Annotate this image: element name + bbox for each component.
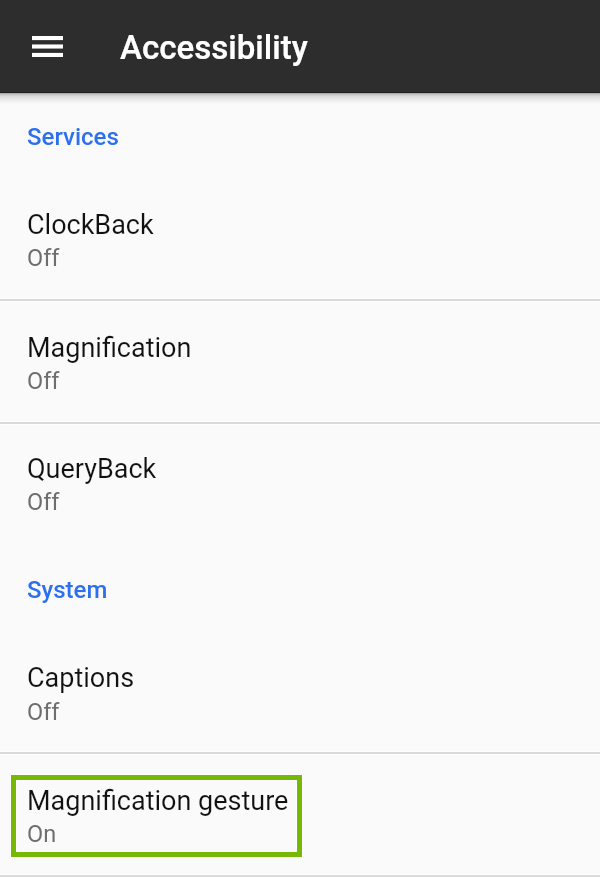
staticText: Magnification gesture: [27, 785, 289, 817]
staticText: Magnification: [27, 332, 192, 364]
button[interactable]: QueryBack, Off: [0, 425, 600, 546]
button[interactable]: Magnification, Off: [0, 302, 600, 421]
staticText: Services: [27, 123, 119, 151]
staticText: QueryBack: [27, 453, 157, 485]
button[interactable]: Open navigation drawer: [21, 20, 73, 72]
staticText: Off: [27, 367, 60, 395]
staticText: Off: [27, 488, 60, 516]
staticText: On: [27, 820, 57, 848]
staticText: Captions: [27, 662, 135, 694]
button[interactable]: Captions, Off: [0, 628, 600, 751]
staticText: Accessibility: [120, 28, 308, 67]
button[interactable]: ClockBack, Off: [0, 176, 600, 298]
staticText: Off: [27, 244, 60, 272]
staticText: Off: [27, 698, 60, 726]
staticText: ClockBack: [27, 209, 154, 241]
staticText: System: [27, 576, 108, 604]
button[interactable]: Magnification gesture, On: [0, 755, 600, 874]
